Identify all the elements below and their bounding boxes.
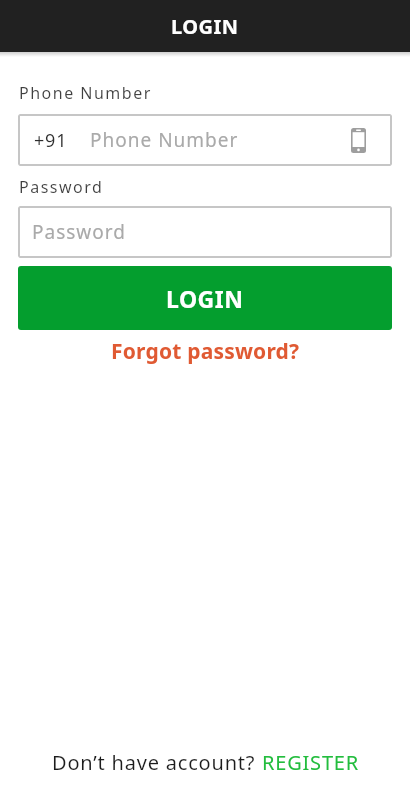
button[interactable]: Forgot password? [105, 335, 306, 368]
button[interactable]: Password [18, 206, 392, 258]
button[interactable]: LOGIN [18, 266, 392, 330]
staticText: Password [32, 219, 126, 245]
staticText: +91 [34, 128, 68, 153]
button[interactable]: +91 [18, 114, 392, 166]
staticText: Password [19, 176, 104, 198]
staticText: LOGIN [166, 283, 244, 314]
staticText: Forgot password? [111, 337, 300, 366]
staticText: REGISTER [262, 749, 359, 776]
staticText: Phone Number [90, 127, 239, 153]
staticText: Phone Number [19, 82, 152, 104]
button[interactable]: REGISTER [262, 749, 359, 776]
staticText: Don’t have account? [52, 749, 262, 776]
staticText: LOGIN [171, 13, 239, 40]
